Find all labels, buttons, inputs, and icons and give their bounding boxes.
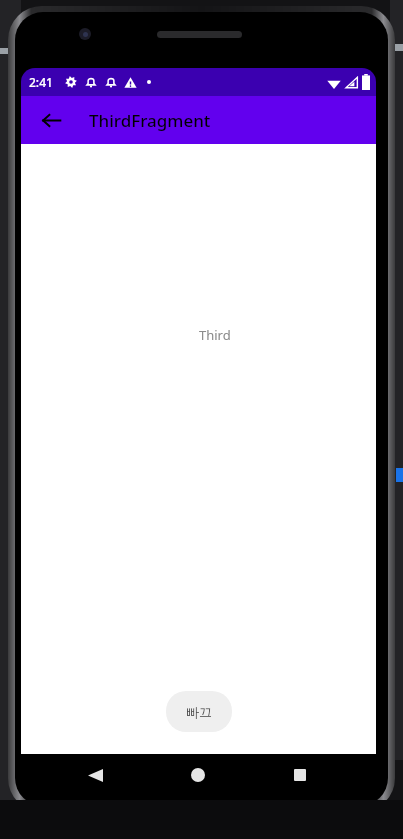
- button[interactable]: Back: [83, 763, 107, 787]
- button[interactable]: Navigate up: [33, 102, 69, 138]
- button[interactable]: 빠끄: [166, 691, 232, 732]
- staticText: ThirdFragment: [89, 109, 211, 132]
- button[interactable]: Recent apps: [288, 763, 312, 787]
- staticText: 2:41: [29, 74, 53, 90]
- button[interactable]: Home: [186, 763, 210, 787]
- staticText: 빠끄: [186, 704, 212, 720]
- staticText: Third: [199, 326, 231, 344]
